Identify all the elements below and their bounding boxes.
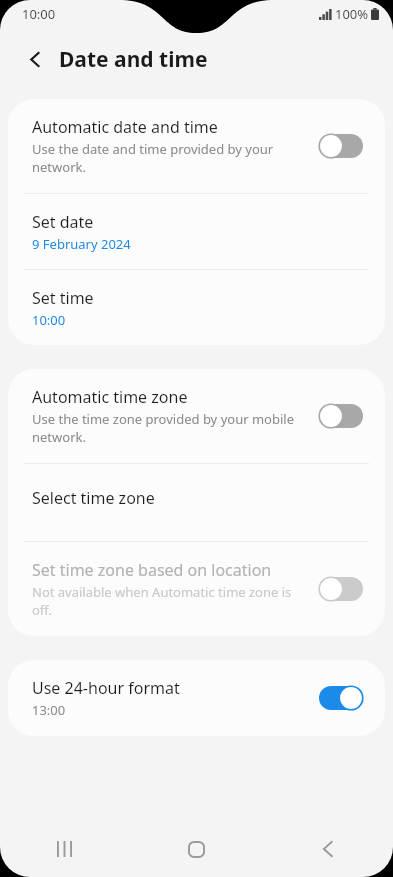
staticText: 13:00 <box>32 701 66 719</box>
staticText: 10:00 <box>22 5 56 23</box>
button[interactable]: Select time zone <box>8 464 385 541</box>
button[interactable]: Toggle <box>315 130 367 162</box>
button[interactable]: Back <box>18 42 52 76</box>
staticText: Use the time zone provided by your mobil… <box>32 410 294 446</box>
button[interactable]: Automatic time zone <box>8 369 385 463</box>
staticText: Set date <box>32 211 94 233</box>
button[interactable]: Automatic date and time <box>8 99 385 193</box>
button[interactable]: Set date <box>8 194 385 269</box>
button[interactable]: Use 24-hour format <box>8 660 385 736</box>
staticText: Use the date and time provided by your n… <box>32 140 274 176</box>
staticText: Select time zone <box>32 487 155 509</box>
button[interactable]: Set time <box>8 270 385 345</box>
button[interactable]: Home <box>131 821 262 877</box>
staticText: Use 24-hour format <box>32 677 180 699</box>
staticText: Set time <box>32 287 94 309</box>
staticText: Set time zone based on location <box>32 559 272 581</box>
button[interactable]: Toggle <box>315 682 367 714</box>
button[interactable]: Set time zone based on location <box>8 542 385 636</box>
button[interactable]: Toggle <box>315 573 367 605</box>
staticText: 10:00 <box>32 311 66 329</box>
staticText: Date and time <box>59 45 208 74</box>
button[interactable]: Back <box>262 821 393 877</box>
button[interactable]: Recent apps <box>0 821 131 877</box>
staticText: Automatic date and time <box>32 116 218 138</box>
button[interactable]: Toggle <box>315 400 367 432</box>
staticText: 100% <box>335 5 369 23</box>
staticText: Automatic time zone <box>32 386 188 408</box>
staticText: 9 February 2024 <box>32 235 131 253</box>
staticText: Not available when Automatic time zone i… <box>32 583 305 619</box>
